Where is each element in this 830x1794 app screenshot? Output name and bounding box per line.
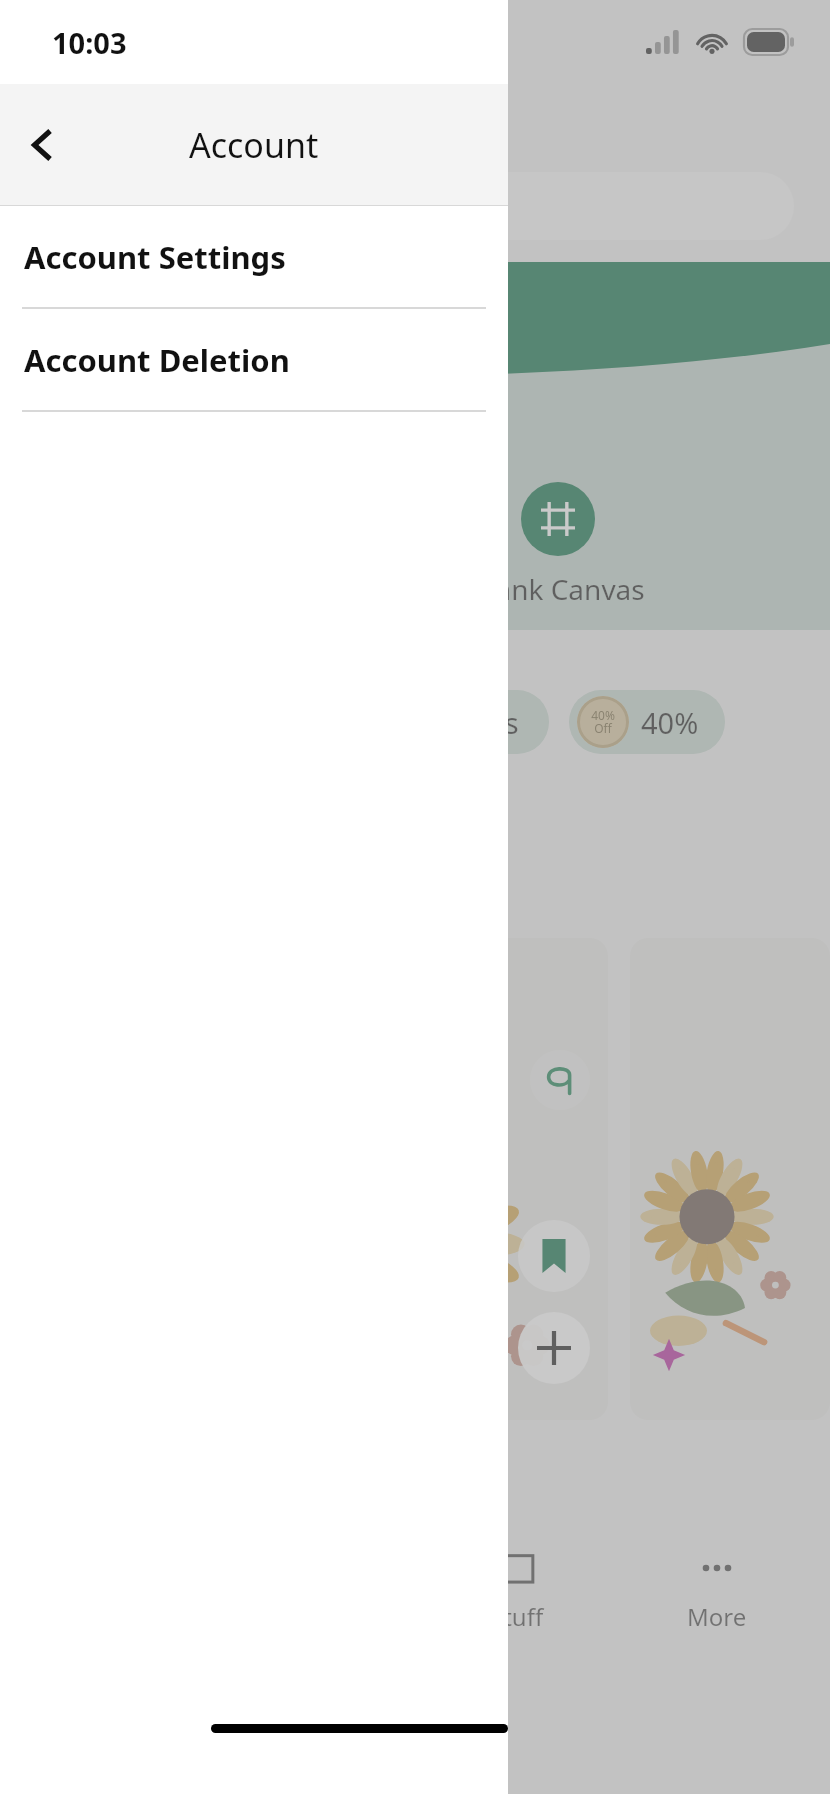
staticText: 10:03 bbox=[52, 23, 127, 62]
button[interactable]: Add bbox=[518, 1312, 590, 1384]
button[interactable]: More bbox=[652, 1546, 782, 1633]
staticText: Account bbox=[189, 122, 319, 168]
button[interactable]: Blank Canvas bbox=[470, 482, 645, 608]
button[interactable] bbox=[630, 938, 830, 1420]
staticText: Blank Canvas bbox=[470, 570, 645, 608]
button[interactable]: Account Deletion bbox=[0, 309, 508, 410]
button[interactable]: Account Settings bbox=[0, 206, 508, 307]
staticText: Account Deletion bbox=[24, 339, 290, 381]
button[interactable]: 40% Off bbox=[569, 690, 725, 754]
staticText: Account Settings bbox=[24, 236, 286, 278]
staticText: 40% bbox=[641, 703, 699, 742]
button[interactable]: Back bbox=[14, 117, 70, 173]
button[interactable]: Projects bbox=[380, 690, 549, 754]
button[interactable]: Save bbox=[518, 1220, 590, 1292]
staticText: More bbox=[687, 1600, 747, 1633]
button[interactable]: Close menu bbox=[0, 0, 830, 1794]
staticText: 40% Off bbox=[591, 707, 615, 737]
staticText: Stuff bbox=[490, 1600, 544, 1633]
button[interactable]: Save bbox=[312, 938, 608, 1420]
staticText: Projects bbox=[410, 703, 519, 742]
button[interactable]: Stuff bbox=[452, 1546, 582, 1633]
button[interactable] bbox=[36, 172, 794, 240]
